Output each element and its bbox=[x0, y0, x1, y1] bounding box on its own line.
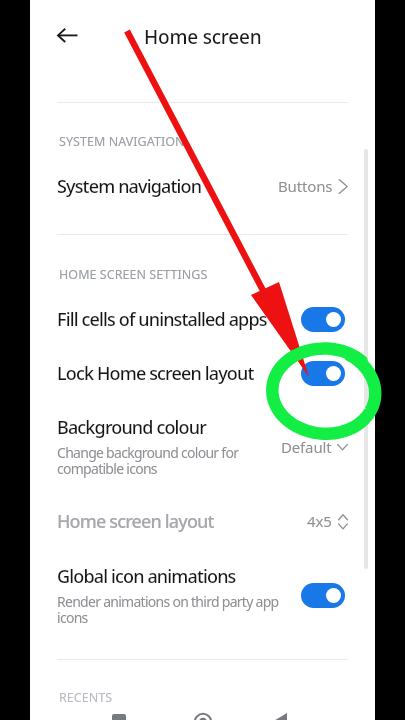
button[interactable] bbox=[301, 307, 345, 332]
staticText: 4x5 bbox=[307, 511, 332, 531]
button[interactable]: Global icon animations bbox=[30, 564, 375, 627]
button[interactable]: Fill cells of uninstalled apps bbox=[30, 302, 375, 336]
staticText: Default bbox=[281, 437, 332, 457]
button[interactable]: Back bbox=[57, 26, 77, 46]
staticText: SYSTEM NAVIGATION bbox=[59, 133, 185, 150]
staticText: Lock Home screen layout bbox=[57, 361, 254, 386]
staticText: Render animations on third party app ico… bbox=[57, 592, 279, 627]
staticText: Background colour bbox=[57, 415, 206, 440]
staticText: Global icon animations bbox=[57, 564, 236, 589]
button[interactable]: Home screen layout bbox=[30, 506, 375, 536]
staticText: RECENTS bbox=[59, 689, 113, 706]
staticText: Change background colour for compatible … bbox=[57, 443, 239, 478]
button[interactable]: Home bbox=[186, 698, 220, 720]
staticText: Home screen bbox=[144, 24, 262, 50]
button[interactable]: Recents bbox=[102, 698, 136, 720]
staticText: System navigation bbox=[57, 174, 202, 199]
button[interactable]: System navigation bbox=[30, 170, 375, 202]
button[interactable]: Lock Home screen layout bbox=[30, 356, 375, 390]
staticText: Home screen layout bbox=[57, 509, 214, 534]
staticText: HOME SCREEN SETTINGS bbox=[59, 266, 208, 283]
staticText: Fill cells of uninstalled apps bbox=[57, 307, 267, 332]
button[interactable] bbox=[301, 361, 345, 386]
button[interactable]: Background colour bbox=[30, 415, 375, 478]
button[interactable] bbox=[301, 583, 345, 608]
staticText: Buttons bbox=[278, 176, 333, 196]
button[interactable]: Back bbox=[264, 698, 298, 720]
